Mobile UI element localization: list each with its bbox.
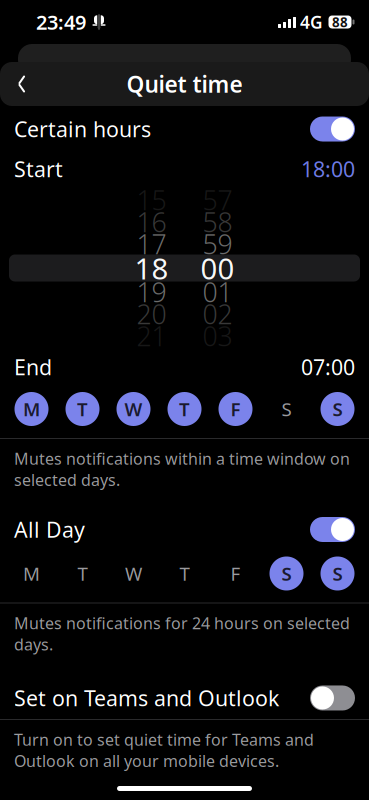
staticText: All Day <box>14 515 85 544</box>
button[interactable]: F <box>214 390 256 428</box>
button[interactable]: W <box>112 390 154 428</box>
staticText: T <box>179 561 189 586</box>
staticText: 17 <box>136 226 166 262</box>
button[interactable]: S <box>265 390 307 428</box>
staticText: Set on Teams and Outlook <box>14 684 279 712</box>
staticText: 07:00 <box>301 353 355 381</box>
staticText: 18:00 <box>301 155 355 183</box>
button[interactable]: End <box>0 348 369 386</box>
staticText: 15 <box>136 182 166 218</box>
staticText: 03 <box>202 318 232 354</box>
staticText: T <box>179 397 190 421</box>
button[interactable]: T <box>61 390 103 428</box>
staticText: M <box>23 561 40 586</box>
staticText: 21 <box>136 318 166 354</box>
staticText: 59 <box>202 226 232 262</box>
staticText: 00 <box>200 248 234 287</box>
button[interactable]: F <box>214 554 256 592</box>
staticText: Start <box>14 155 63 183</box>
button[interactable]: Set on Teams and Outlook <box>0 677 369 719</box>
staticText: End <box>14 353 52 381</box>
button[interactable]: M <box>10 390 52 428</box>
staticText: S <box>281 397 291 421</box>
staticText: F <box>230 561 240 586</box>
staticText: T <box>77 561 87 586</box>
staticText: F <box>230 397 240 421</box>
button[interactable]: S <box>265 554 307 592</box>
button[interactable]: Start <box>0 150 369 188</box>
staticText: S <box>332 561 342 586</box>
button[interactable]: Certain hours <box>0 108 369 150</box>
staticText: Mutes notifications for 24 hours on sele… <box>14 612 350 655</box>
staticText: W <box>124 397 142 421</box>
button[interactable]: S <box>316 554 358 592</box>
button[interactable]: T <box>163 390 205 428</box>
staticText: T <box>77 397 88 421</box>
staticText: 18 <box>134 248 168 287</box>
button[interactable]: S <box>316 390 358 428</box>
button[interactable]: W <box>112 554 154 592</box>
staticText: S <box>332 397 342 421</box>
button[interactable]: T <box>61 554 103 592</box>
staticText: 57 <box>202 182 232 218</box>
button[interactable]: Back <box>0 62 44 106</box>
staticText: Quiet time <box>126 69 242 99</box>
staticText: S <box>281 561 291 586</box>
staticText: 88 <box>332 13 348 31</box>
staticText: 58 <box>202 204 232 240</box>
staticText: 19 <box>136 274 166 310</box>
staticText: Mutes notifications within a time window… <box>14 448 350 490</box>
staticText: 23:49 <box>36 9 86 35</box>
staticText: W <box>125 561 142 586</box>
staticText: Certain hours <box>14 115 151 143</box>
button[interactable]: All Day <box>0 508 369 550</box>
staticText: 01 <box>202 274 232 310</box>
staticText: Turn on to set quiet time for Teams and … <box>14 729 314 771</box>
button[interactable]: M <box>10 554 52 592</box>
button[interactable]: T <box>163 554 205 592</box>
staticText: M <box>23 397 40 421</box>
staticText: 16 <box>136 204 166 240</box>
staticText: 02 <box>202 296 232 332</box>
staticText: 4G <box>300 10 323 33</box>
staticText: 20 <box>136 296 166 332</box>
